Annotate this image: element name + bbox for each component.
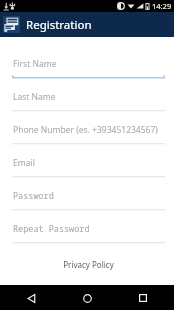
button[interactable]: Password [12,187,165,211]
button[interactable]: Home [76,287,98,309]
button[interactable]: Privacy Policy [57,257,120,272]
button[interactable]: Back [20,287,42,309]
button[interactable]: First Name [12,55,165,79]
staticText: Last Name [13,91,56,103]
staticText: Email [13,157,35,169]
staticText: Phone Number (es. +393451234567) [13,124,158,136]
staticText: Repeat Password [13,223,90,235]
button[interactable]: Recent apps [132,287,154,309]
button[interactable]: Phone Number (es. +393451234567) [12,121,165,145]
staticText: 14:29 [152,1,172,11]
staticText: Password [13,190,54,202]
button[interactable]: Last Name [12,88,165,112]
staticText: Privacy Policy [63,259,114,270]
button[interactable]: Email [12,154,165,178]
button[interactable]: Repeat Password [12,220,165,244]
staticText: First Name [13,58,57,70]
staticText: Registration [26,17,92,33]
